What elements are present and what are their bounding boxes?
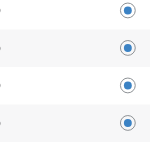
staticText: Radio bbox=[0, 112, 1, 130]
staticText: Video bbox=[0, 37, 1, 55]
button[interactable]: Video bbox=[0, 30, 150, 68]
staticText: Photo bbox=[0, 74, 1, 92]
staticText: Audio bbox=[0, 0, 1, 17]
button[interactable]: Audio bbox=[0, 0, 150, 30]
button[interactable]: Radio bbox=[0, 105, 150, 143]
button[interactable]: Photo bbox=[0, 67, 150, 105]
